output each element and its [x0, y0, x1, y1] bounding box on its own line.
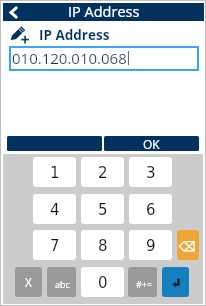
button[interactable]: X: [15, 267, 42, 297]
staticText: 4: [50, 201, 60, 218]
button[interactable]: 010.120.010.068: [9, 46, 199, 71]
button[interactable]: 7: [33, 230, 76, 260]
button[interactable]: 1: [33, 157, 76, 187]
staticText: OK: [143, 136, 160, 151]
button[interactable]: 3: [129, 157, 172, 187]
button[interactable]: 9: [129, 230, 172, 260]
button[interactable]: OK: [104, 136, 199, 151]
button[interactable]: 5: [81, 194, 124, 224]
button[interactable]: 0: [81, 267, 124, 297]
staticText: 1: [50, 164, 60, 181]
button[interactable]: #+=: [128, 267, 157, 297]
button[interactable]: 6: [129, 194, 172, 224]
button[interactable]: Cancel: [7, 136, 102, 151]
staticText: X: [25, 274, 32, 290]
staticText: 6: [146, 201, 156, 218]
button[interactable]: 4: [33, 194, 76, 224]
staticText: 8: [98, 237, 108, 254]
button[interactable]: Enter: [162, 267, 189, 297]
staticText: 3: [146, 164, 156, 181]
staticText: 2: [98, 164, 108, 181]
button[interactable]: 8: [81, 230, 124, 260]
staticText: 7: [50, 237, 60, 254]
staticText: 9: [146, 237, 156, 254]
staticText: abc: [55, 278, 70, 290]
button[interactable]: abc: [47, 267, 76, 297]
staticText: 5: [98, 201, 108, 218]
staticText: #+=: [136, 278, 153, 290]
staticText: 010.120.010.068: [12, 48, 127, 68]
staticText: IP Address: [68, 2, 140, 20]
staticText: 0: [98, 274, 108, 291]
button[interactable]: 2: [81, 157, 124, 187]
button[interactable]: Back: [4, 3, 22, 21]
staticText: IP Address: [39, 26, 110, 42]
button[interactable]: Backspace: [177, 230, 199, 260]
